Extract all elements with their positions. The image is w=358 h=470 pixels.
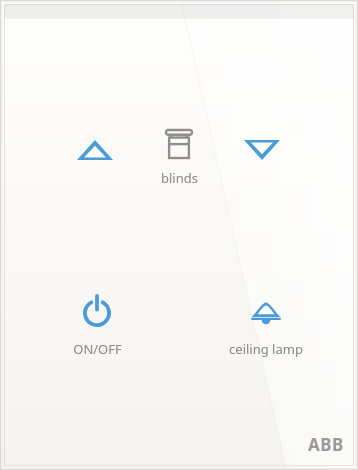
button[interactable]: Lower blinds <box>222 118 302 182</box>
staticText: ON/OFF <box>73 340 122 358</box>
staticText: blinds <box>161 169 198 187</box>
button[interactable]: ON/OFF <box>55 290 139 358</box>
button[interactable]: ceiling lamp <box>212 290 320 358</box>
staticText: ABB <box>308 433 344 456</box>
button[interactable]: blinds <box>139 118 219 187</box>
staticText: ceiling lamp <box>229 340 303 358</box>
button[interactable]: Raise blinds <box>55 118 135 182</box>
